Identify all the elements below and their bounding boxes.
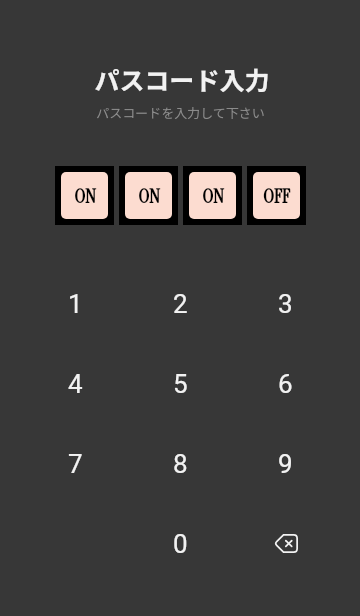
button[interactable]: 4 — [22, 344, 128, 424]
staticText: 8 — [173, 449, 188, 479]
staticText: 0 — [173, 529, 188, 559]
staticText: 1 — [68, 289, 83, 319]
staticText: ON — [74, 183, 96, 209]
staticText: 3 — [278, 289, 293, 319]
button[interactable]: 0 — [128, 504, 233, 584]
button[interactable]: ON — [183, 166, 242, 225]
button[interactable]: 9 — [233, 424, 338, 504]
button[interactable]: 3 — [233, 264, 338, 344]
button[interactable]: 8 — [128, 424, 233, 504]
staticText: パスコードを入力して下さい — [96, 103, 265, 122]
staticText: OFF — [263, 183, 290, 209]
button[interactable]: OFF — [247, 166, 306, 225]
staticText: 7 — [68, 449, 83, 479]
button[interactable]: 5 — [128, 344, 233, 424]
staticText: 9 — [278, 449, 293, 479]
button[interactable]: Backspace — [233, 504, 338, 584]
staticText: 6 — [278, 369, 293, 399]
staticText: 2 — [173, 289, 188, 319]
button[interactable]: 7 — [22, 424, 128, 504]
button[interactable]: 2 — [128, 264, 233, 344]
staticText: パスコード入力 — [94, 61, 270, 97]
staticText: 4 — [68, 369, 83, 399]
button[interactable]: ON — [55, 166, 114, 225]
staticText: 5 — [173, 369, 188, 399]
staticText: ON — [138, 183, 160, 209]
button[interactable]: ON — [119, 166, 178, 225]
button[interactable]: 6 — [233, 344, 338, 424]
other: Backspace — [274, 534, 298, 553]
staticText: ON — [202, 183, 224, 209]
button[interactable]: 1 — [22, 264, 128, 344]
